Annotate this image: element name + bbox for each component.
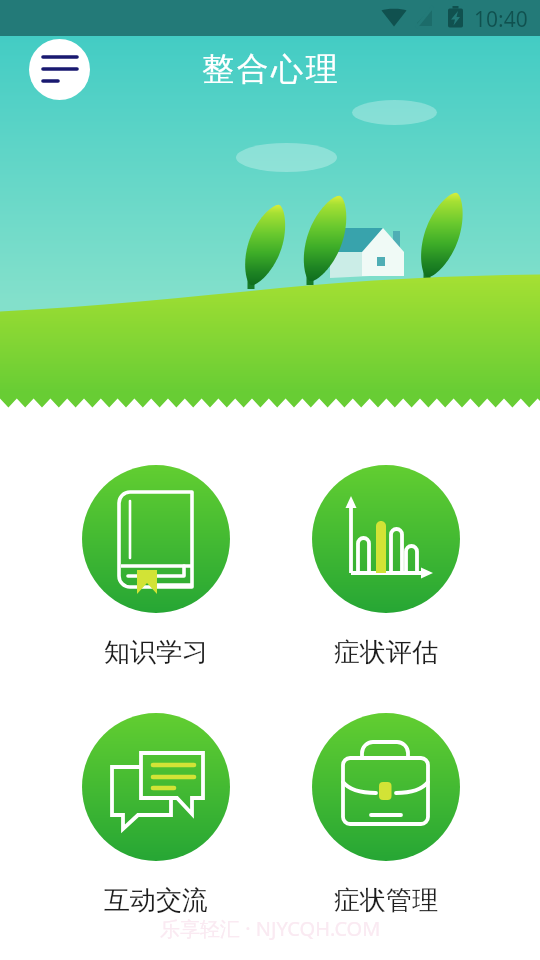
button[interactable]: 互动交流	[69, 713, 243, 917]
staticText: 互动交流	[104, 884, 208, 917]
staticText: 症状管理	[334, 884, 438, 917]
staticText: 症状评估	[334, 636, 438, 669]
staticText: 10:40	[474, 5, 528, 34]
button[interactable]: 知识学习	[69, 465, 243, 669]
staticText: 乐享轻汇 · NJYCQH.COM	[160, 915, 381, 942]
button[interactable]: 症状管理	[299, 713, 473, 917]
staticText: 知识学习	[104, 636, 208, 669]
staticText: 整合心理	[201, 49, 339, 89]
button[interactable]: 症状评估	[299, 465, 473, 669]
button[interactable]: Menu	[29, 39, 90, 100]
